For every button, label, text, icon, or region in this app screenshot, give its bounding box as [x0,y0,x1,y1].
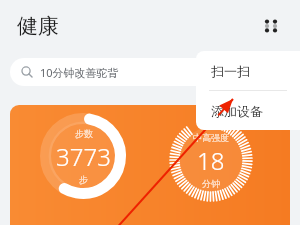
button[interactable]: More options [254,9,288,43]
staticText: 分钟 [202,178,220,189]
staticText: 扫一扫 [211,63,250,79]
button[interactable]: 步数 [10,105,290,225]
button[interactable]: 10分钟改善驼背 [10,58,290,86]
staticText: 步数 [75,128,93,139]
staticText: 添加设备 [211,103,263,119]
staticText: 10分钟改善驼背 [40,65,119,80]
button[interactable]: 扫一扫 [196,51,300,90]
button[interactable]: 添加设备 [196,91,300,130]
staticText: 健康 [17,13,59,39]
staticText: 步 [79,174,88,185]
staticText: 18 [197,144,225,177]
staticText: 3773 [56,140,111,173]
staticText: 中高强度 [193,132,229,143]
